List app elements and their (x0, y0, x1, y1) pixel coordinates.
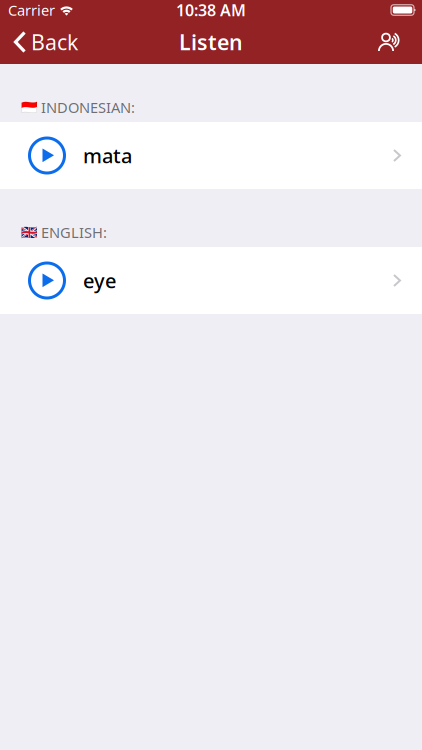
staticText: Back (31, 28, 78, 56)
staticText: 🇮🇩 (21, 100, 38, 115)
staticText: eye (83, 267, 116, 294)
staticText: INDONESIAN: (41, 97, 135, 117)
button[interactable]: Back (6, 20, 86, 64)
button[interactable]: mata (0, 122, 422, 189)
staticText: mata (83, 142, 132, 169)
staticText: Carrier (8, 0, 55, 20)
staticText: 🇬🇧 (21, 225, 38, 240)
staticText: ENGLISH: (41, 222, 107, 242)
staticText: Listen (179, 28, 243, 56)
button[interactable]: Speak (366, 20, 416, 64)
staticText: 10:38 AM (176, 0, 246, 21)
button[interactable]: eye (0, 247, 422, 314)
